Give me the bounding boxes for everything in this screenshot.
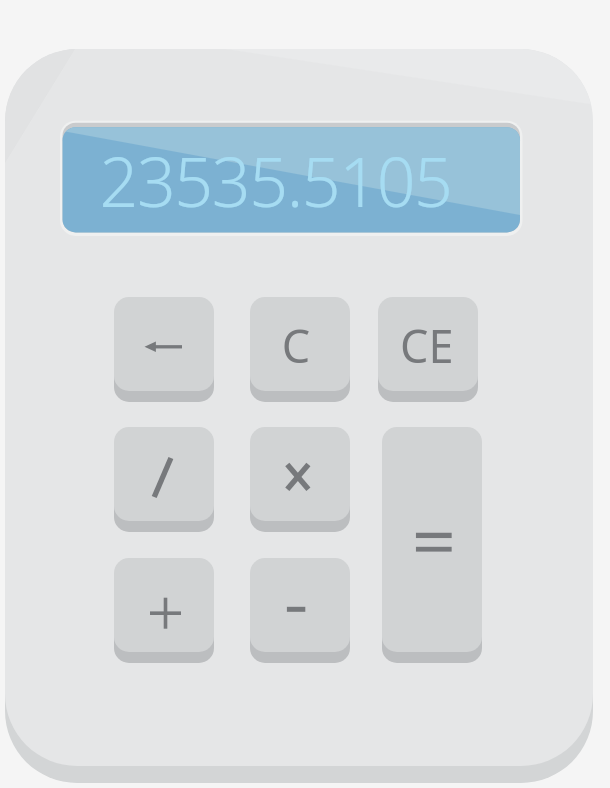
button[interactable]: Multiply (250, 427, 350, 532)
button[interactable]: Equals (382, 427, 482, 663)
button[interactable]: Clear entry (378, 297, 478, 402)
button[interactable]: Clear (250, 297, 350, 402)
button[interactable]: Minus (250, 558, 350, 663)
button[interactable]: Divide (114, 427, 214, 532)
button[interactable]: Backspace (114, 297, 214, 402)
button[interactable]: Plus (114, 558, 214, 663)
